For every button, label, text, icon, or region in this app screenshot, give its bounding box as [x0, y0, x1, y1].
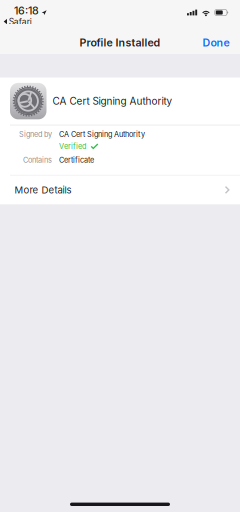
staticText: Contains — [23, 156, 52, 164]
button[interactable]: More Details — [0, 176, 240, 204]
staticText: More Details — [14, 184, 71, 196]
staticText: Done — [202, 36, 229, 49]
staticText: Certificate — [59, 156, 94, 164]
staticText: 16:18 — [14, 4, 39, 17]
staticText: Profile Installed — [79, 36, 160, 49]
staticText: CA Cert Signing Authority — [52, 95, 172, 107]
staticText: CA Cert Signing Authority — [59, 130, 145, 139]
staticText: Safari — [9, 16, 32, 27]
button[interactable]: Done — [197, 31, 234, 54]
staticText: Verified — [59, 142, 86, 151]
staticText: Signed by — [19, 130, 52, 139]
